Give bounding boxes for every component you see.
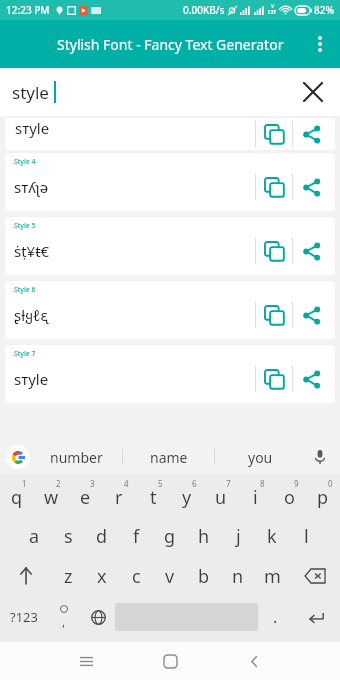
button[interactable]: Emoji bbox=[47, 596, 81, 638]
button[interactable]: Share bbox=[293, 295, 329, 335]
button[interactable]: t bbox=[136, 474, 170, 516]
button[interactable]: v bbox=[153, 556, 187, 596]
staticText: b bbox=[198, 564, 210, 589]
button[interactable]: Home bbox=[142, 642, 198, 680]
button[interactable]: k bbox=[255, 516, 289, 556]
staticText: 7 bbox=[226, 478, 231, 489]
button[interactable]: Enter bbox=[292, 596, 340, 638]
button[interactable]: m bbox=[255, 556, 289, 596]
button[interactable]: style bbox=[0, 68, 340, 116]
staticText: i bbox=[253, 485, 258, 510]
button[interactable]: d bbox=[85, 516, 119, 556]
button[interactable]: b bbox=[187, 556, 221, 596]
staticText: , bbox=[62, 613, 66, 629]
button[interactable]: i bbox=[238, 474, 272, 516]
staticText: Stylish Font - Fancy Text Generator bbox=[57, 35, 284, 54]
staticText: z bbox=[64, 564, 73, 589]
staticText: Style 5 bbox=[14, 221, 36, 231]
staticText: a bbox=[29, 524, 40, 549]
staticText: 4 bbox=[124, 478, 129, 489]
button[interactable]: Copy bbox=[256, 359, 292, 399]
button[interactable]: Style 4 bbox=[5, 153, 335, 211]
button[interactable]: x bbox=[85, 556, 119, 596]
button[interactable]: Backspace bbox=[289, 556, 340, 596]
staticText: ʂƚყℓᶓ bbox=[14, 305, 49, 325]
staticText: LTE bbox=[268, 9, 277, 16]
button[interactable]: w bbox=[34, 474, 68, 516]
button[interactable]: Change keyboard bbox=[81, 596, 115, 638]
staticText: 0.00KB/s bbox=[183, 3, 225, 17]
button[interactable]: e bbox=[68, 474, 102, 516]
staticText: Style 4 bbox=[14, 157, 36, 167]
button[interactable]: a bbox=[17, 516, 51, 556]
button[interactable]: s bbox=[51, 516, 85, 556]
button[interactable]: g bbox=[153, 516, 187, 556]
staticText: 6 bbox=[192, 478, 197, 489]
staticText: . bbox=[273, 606, 278, 628]
button[interactable]: u bbox=[204, 474, 238, 516]
button[interactable]: sᴛyle bbox=[5, 118, 335, 150]
button[interactable]: . bbox=[258, 596, 292, 638]
staticText: 1 bbox=[22, 478, 27, 489]
staticText: r bbox=[115, 485, 123, 510]
button[interactable]: p bbox=[306, 474, 340, 516]
staticText: o bbox=[284, 485, 295, 510]
staticText: c bbox=[132, 564, 141, 589]
button[interactable]: h bbox=[187, 516, 221, 556]
button[interactable]: Style 7 bbox=[5, 345, 335, 403]
staticText: t bbox=[150, 485, 157, 510]
button[interactable]: y bbox=[170, 474, 204, 516]
staticText: x bbox=[97, 564, 107, 589]
staticText: f bbox=[133, 524, 140, 549]
staticText: g bbox=[164, 524, 176, 549]
button[interactable]: o bbox=[272, 474, 306, 516]
staticText: k bbox=[267, 524, 277, 549]
button[interactable]: Copy bbox=[256, 118, 292, 150]
staticText: v bbox=[165, 564, 175, 589]
button[interactable]: Share bbox=[293, 167, 329, 207]
staticText: sᴛyle bbox=[15, 118, 50, 138]
staticText: style bbox=[12, 81, 49, 104]
button[interactable]: More options bbox=[300, 20, 340, 68]
staticText: p bbox=[317, 485, 329, 510]
button[interactable]: Share bbox=[293, 231, 329, 271]
button[interactable]: f bbox=[119, 516, 153, 556]
staticText: ?123 bbox=[10, 608, 38, 626]
button[interactable]: ?123 bbox=[0, 596, 47, 638]
button[interactable]: Clear bbox=[296, 75, 330, 109]
staticText: ṡṭ¥ŧ€ bbox=[14, 241, 50, 261]
button[interactable]: Google bbox=[6, 445, 30, 469]
button[interactable]: Voice input bbox=[306, 443, 334, 471]
button[interactable]: number bbox=[30, 440, 122, 474]
button[interactable]: z bbox=[51, 556, 85, 596]
staticText: 2 bbox=[56, 478, 61, 489]
button[interactable]: Back bbox=[226, 642, 282, 680]
button[interactable]: r bbox=[102, 474, 136, 516]
button[interactable]: Share bbox=[293, 359, 329, 399]
staticText: e bbox=[80, 485, 91, 510]
button[interactable]: l bbox=[289, 516, 323, 556]
staticText: u bbox=[215, 485, 227, 510]
button[interactable]: you bbox=[215, 440, 306, 474]
button[interactable]: Style 6 bbox=[5, 281, 335, 339]
staticText: name bbox=[150, 448, 188, 467]
button[interactable]: Share bbox=[293, 118, 329, 150]
button[interactable]: Copy bbox=[256, 295, 292, 335]
button[interactable]: Copy bbox=[256, 167, 292, 207]
button[interactable]: q bbox=[0, 474, 34, 516]
staticText: sᴛʎʅə bbox=[14, 177, 49, 197]
staticText: h bbox=[198, 524, 210, 549]
staticText: j bbox=[236, 524, 241, 549]
button[interactable]: name bbox=[123, 440, 214, 474]
staticText: Style 7 bbox=[14, 349, 36, 359]
button[interactable]: Copy bbox=[256, 231, 292, 271]
staticText: y bbox=[182, 485, 192, 510]
staticText: s bbox=[64, 524, 73, 549]
button[interactable]: n bbox=[221, 556, 255, 596]
button[interactable]: c bbox=[119, 556, 153, 596]
button[interactable]: Recents bbox=[58, 642, 114, 680]
button[interactable]: Style 5 bbox=[5, 217, 335, 275]
button[interactable]: j bbox=[221, 516, 255, 556]
button[interactable]: Shift bbox=[0, 556, 51, 596]
